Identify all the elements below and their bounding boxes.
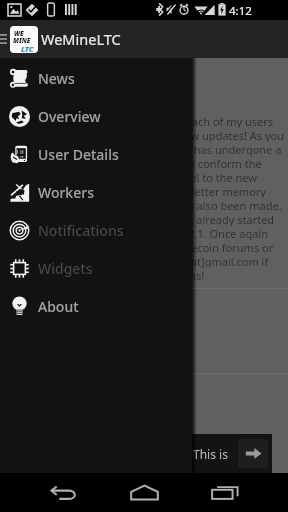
staticText: MINE — [13, 36, 31, 45]
staticText: Hi, I wanted to reach of my users — [103, 114, 274, 128]
staticText: and give you a few updates! As you — [103, 128, 285, 142]
staticText: News — [38, 69, 75, 88]
staticText: Widgets — [38, 259, 93, 278]
button[interactable]: App icon — [10, 26, 38, 53]
staticText: major redesign to conform the — [103, 156, 262, 170]
staticText: This is — [193, 446, 228, 462]
staticText: Development has already started — [103, 212, 275, 226]
button[interactable]: Workers — [0, 173, 192, 211]
staticText: 4:12 — [229, 3, 252, 19]
button[interactable]: About — [0, 287, 192, 325]
staticText: About — [38, 297, 79, 316]
button[interactable]: Next — [238, 439, 268, 468]
staticText: may see, the app has undergone a — [103, 142, 282, 156]
staticText: you have any ideas! — [103, 268, 205, 282]
button[interactable]: Back — [40, 473, 88, 512]
staticText: User Details — [38, 145, 119, 164]
staticText: Android design. Better memory — [103, 184, 266, 198]
staticText: Overview — [38, 107, 101, 126]
staticText: management has also been made. — [103, 198, 282, 212]
staticText: on WeMineLTC v2.1. Once again — [103, 226, 268, 240]
button[interactable]: Widgets — [0, 249, 192, 287]
button[interactable]: News — [0, 59, 192, 97]
button[interactable]: Notifications — [0, 211, 192, 249]
button[interactable]: Home — [120, 473, 168, 512]
staticText: find me on the litecoin forums or — [103, 240, 274, 254]
button[interactable]: User Details — [0, 135, 192, 173]
staticText: app's look and feel to the new — [103, 170, 257, 184]
staticText: WeMineLTC — [41, 29, 121, 49]
button[interactable]: Recent apps — [201, 473, 249, 512]
staticText: email wemineltc[at]gmail.com if — [103, 254, 269, 268]
button[interactable]: Open navigation drawer — [0, 20, 8, 58]
button[interactable]: Overview — [0, 97, 192, 135]
staticText: WE — [14, 29, 24, 38]
staticText: Workers — [38, 183, 94, 202]
staticText: LTC — [21, 44, 34, 53]
staticText: Notifications — [38, 221, 124, 240]
